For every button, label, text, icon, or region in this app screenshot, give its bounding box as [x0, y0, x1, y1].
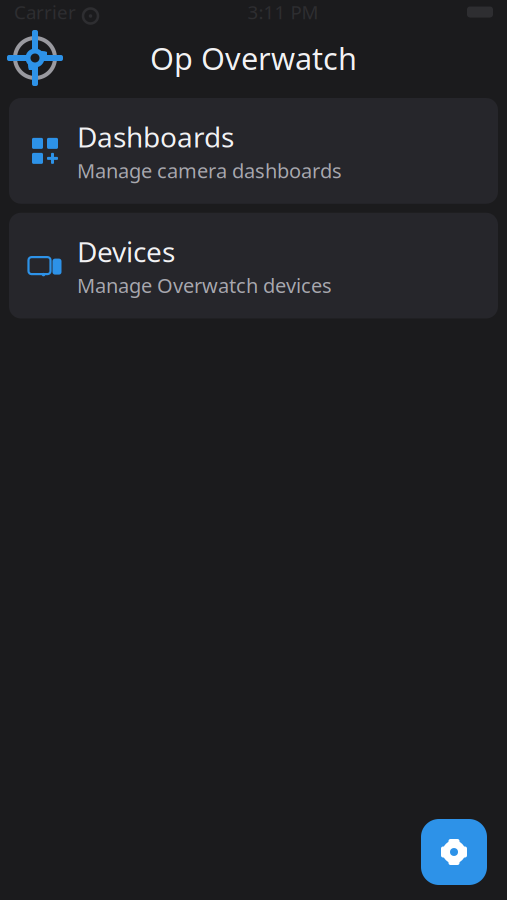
- staticText: Dashboards: [77, 118, 234, 155]
- staticText: Devices: [77, 233, 175, 270]
- staticText: 3:11 PM: [247, 0, 318, 24]
- staticText: Manage Overwatch devices: [77, 272, 332, 298]
- staticText: Carrier: [14, 0, 76, 24]
- staticText: Op Overwatch: [150, 38, 357, 78]
- button[interactable]: Dashboards: [9, 98, 498, 204]
- button[interactable]: Op Overwatch: [0, 29, 64, 87]
- button[interactable]: Devices: [9, 213, 498, 318]
- button[interactable]: Settings: [421, 819, 487, 885]
- staticText: Manage camera dashboards: [77, 157, 342, 184]
